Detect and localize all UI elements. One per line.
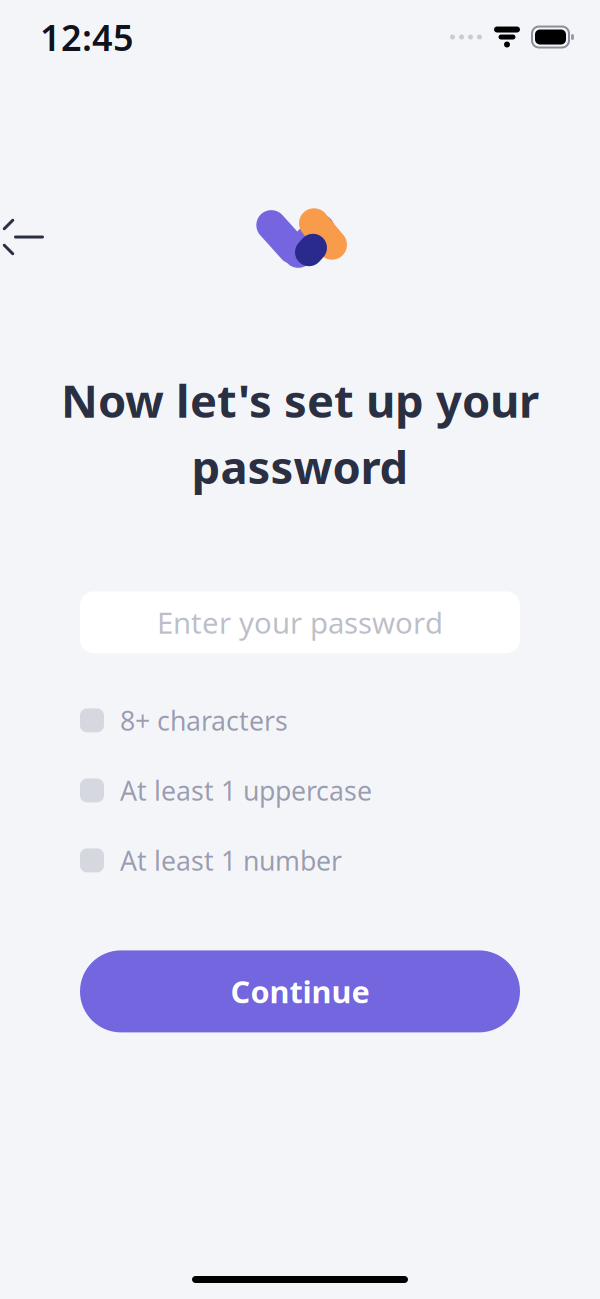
staticText: Continue: [230, 971, 369, 1012]
staticText: At least 1 number: [120, 843, 342, 878]
button[interactable]: Back: [0, 211, 58, 263]
staticText: password: [191, 436, 408, 496]
staticText: 12:45: [40, 13, 134, 61]
staticText: 8+ characters: [120, 703, 288, 738]
button[interactable]: Continue: [80, 950, 520, 1032]
staticText: At least 1 uppercase: [120, 773, 372, 808]
staticText: Enter your password: [157, 603, 443, 642]
staticText: Now let's set up your: [61, 370, 539, 430]
button[interactable]: Enter your password: [80, 591, 520, 653]
